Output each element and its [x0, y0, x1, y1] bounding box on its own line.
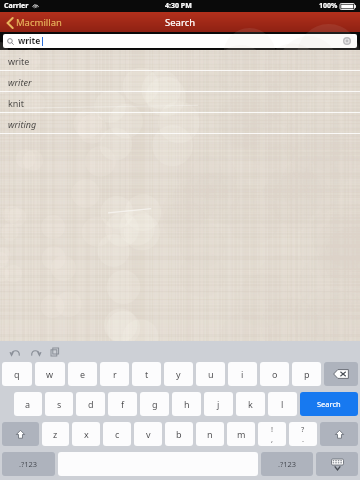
- button[interactable]: Clear search: [341, 35, 353, 47]
- staticText: knit: [8, 97, 24, 109]
- staticText: g: [152, 398, 158, 410]
- button[interactable]: e: [68, 362, 97, 386]
- staticText: y: [176, 368, 181, 380]
- staticText: writing: [8, 118, 37, 130]
- staticText: 4:30 PM: [165, 1, 192, 11]
- button[interactable]: f: [108, 392, 137, 416]
- staticText: n: [207, 428, 213, 440]
- button[interactable]: w: [35, 362, 65, 386]
- button[interactable]: !: [258, 422, 286, 446]
- staticText: 100%: [319, 1, 338, 11]
- button[interactable]: write: [3, 34, 357, 48]
- button[interactable]: m: [227, 422, 255, 446]
- button[interactable]: Shift: [320, 422, 358, 446]
- staticText: u: [208, 368, 214, 380]
- button[interactable]: s: [45, 392, 73, 416]
- staticText: t: [145, 368, 149, 380]
- button[interactable]: j: [204, 392, 233, 416]
- button[interactable]: Undo: [5, 343, 25, 361]
- staticText: m: [237, 428, 246, 440]
- button[interactable]: a: [14, 392, 42, 416]
- button[interactable]: .?123: [2, 452, 55, 476]
- button[interactable]: .?123: [261, 452, 313, 476]
- button[interactable]: x: [72, 422, 100, 446]
- button[interactable]: writer: [0, 71, 360, 92]
- button[interactable]: writing: [0, 113, 360, 134]
- staticText: !: [271, 424, 274, 434]
- button[interactable]: h: [172, 392, 201, 416]
- button[interactable]: b: [165, 422, 193, 446]
- staticText: l: [281, 398, 284, 410]
- staticText: r: [113, 368, 117, 380]
- button[interactable]: Search: [300, 392, 358, 416]
- button[interactable]: k: [236, 392, 265, 416]
- staticText: e: [80, 368, 86, 380]
- staticText: c: [115, 428, 120, 440]
- button[interactable]: l: [268, 392, 297, 416]
- staticText: b: [176, 428, 182, 440]
- button[interactable]: Macmillan: [5, 14, 64, 31]
- button[interactable]: n: [196, 422, 224, 446]
- staticText: i: [241, 368, 244, 380]
- staticText: Search: [317, 399, 341, 409]
- button[interactable]: z: [42, 422, 69, 446]
- button[interactable]: g: [140, 392, 169, 416]
- button[interactable]: o: [260, 362, 289, 386]
- button[interactable]: d: [76, 392, 105, 416]
- button[interactable]: write: [0, 50, 360, 71]
- staticText: Macmillan: [16, 16, 62, 29]
- staticText: Carrier: [4, 1, 29, 11]
- staticText: write: [8, 55, 30, 67]
- button[interactable]: r: [100, 362, 129, 386]
- staticText: z: [53, 428, 58, 440]
- button[interactable]: Paste: [45, 343, 65, 361]
- staticText: j: [217, 398, 220, 410]
- staticText: a: [25, 398, 31, 410]
- staticText: o: [272, 368, 278, 380]
- staticText: f: [121, 398, 125, 410]
- staticText: writer: [8, 76, 32, 88]
- button[interactable]: Hide keyboard: [316, 452, 358, 476]
- staticText: w: [46, 368, 54, 380]
- staticText: v: [146, 428, 151, 440]
- button[interactable]: Backspace: [324, 362, 358, 386]
- button[interactable]: knit: [0, 92, 360, 113]
- staticText: ,: [271, 434, 274, 444]
- button[interactable]: i: [228, 362, 257, 386]
- button[interactable]: u: [196, 362, 225, 386]
- button[interactable]: y: [164, 362, 193, 386]
- staticText: .?123: [19, 459, 38, 469]
- staticText: Search: [165, 16, 196, 29]
- staticText: write: [18, 35, 41, 47]
- staticText: .?123: [278, 459, 297, 469]
- staticText: .: [302, 434, 305, 444]
- staticText: ?: [301, 424, 305, 434]
- button[interactable]: p: [292, 362, 321, 386]
- button[interactable]: ?: [289, 422, 317, 446]
- button[interactable]: Shift: [2, 422, 39, 446]
- staticText: q: [14, 368, 20, 380]
- button[interactable]: t: [132, 362, 161, 386]
- staticText: s: [57, 398, 62, 410]
- button[interactable]: v: [134, 422, 162, 446]
- staticText: h: [184, 398, 190, 410]
- button[interactable]: c: [103, 422, 131, 446]
- staticText: d: [88, 398, 94, 410]
- staticText: x: [84, 428, 89, 440]
- button[interactable]: Redo: [25, 343, 45, 361]
- staticText: k: [248, 398, 253, 410]
- staticText: p: [304, 368, 310, 380]
- button[interactable]: q: [2, 362, 32, 386]
